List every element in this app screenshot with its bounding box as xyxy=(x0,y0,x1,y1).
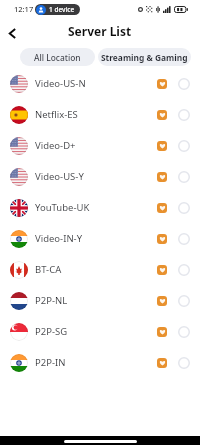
button[interactable]: Favorite xyxy=(157,327,167,337)
button[interactable]: Streaming & Gaming xyxy=(98,48,191,66)
button[interactable]: P2P-SG xyxy=(0,316,200,347)
staticText: Video-D+ xyxy=(35,139,76,152)
staticText: Video-US-Y xyxy=(35,170,84,183)
staticText: Video-US-N xyxy=(35,77,86,90)
button[interactable]: P2P-NL xyxy=(0,285,200,316)
button[interactable]: YouTube-UK xyxy=(0,192,200,223)
staticText: BT-CA xyxy=(35,263,62,276)
staticText: P2P-SG xyxy=(35,325,68,338)
staticText: 1 device xyxy=(49,5,75,14)
button[interactable]: Favorite xyxy=(157,141,167,151)
staticText: Streaming & Gaming xyxy=(101,52,188,63)
staticText: P2P-IN xyxy=(35,356,66,369)
button[interactable]: Select server xyxy=(178,357,190,369)
button[interactable]: Select server xyxy=(178,264,190,276)
button[interactable]: Select server xyxy=(178,326,190,338)
staticText: 12:17 xyxy=(14,4,34,14)
button[interactable]: P2P-IN xyxy=(0,347,200,378)
button[interactable]: Select server xyxy=(178,202,190,214)
button[interactable]: Select server xyxy=(178,140,190,152)
button[interactable]: Video-US-N xyxy=(0,68,200,99)
staticText: Netflix-ES xyxy=(35,108,78,121)
button[interactable]: BT-CA xyxy=(0,254,200,285)
button[interactable]: Select server xyxy=(178,78,190,90)
button[interactable]: Select server xyxy=(178,171,190,183)
button[interactable]: Favorite xyxy=(157,110,167,120)
button[interactable]: Favorite xyxy=(157,358,167,368)
button[interactable]: Favorite xyxy=(157,234,167,244)
button[interactable]: Netflix-ES xyxy=(0,99,200,130)
button[interactable]: All Location xyxy=(20,48,95,66)
button[interactable]: Favorite xyxy=(157,265,167,275)
button[interactable]: Select server xyxy=(178,233,190,245)
button[interactable]: Video-IN-Y xyxy=(0,223,200,254)
button[interactable]: Select server xyxy=(178,109,190,121)
button[interactable]: Video-D+ xyxy=(0,130,200,161)
staticText: All Location xyxy=(34,52,81,63)
button[interactable]: Video-US-Y xyxy=(0,161,200,192)
button[interactable]: Favorite xyxy=(157,203,167,213)
button[interactable]: Back xyxy=(1,22,24,45)
button[interactable]: Favorite xyxy=(157,172,167,182)
staticText: Video-IN-Y xyxy=(35,232,83,245)
staticText: YouTube-UK xyxy=(35,201,90,214)
button[interactable]: Favorite xyxy=(157,296,167,306)
staticText: Server List xyxy=(68,23,132,39)
button[interactable]: Favorite xyxy=(157,79,167,89)
staticText: P2P-NL xyxy=(35,294,68,307)
button[interactable]: Select server xyxy=(178,295,190,307)
